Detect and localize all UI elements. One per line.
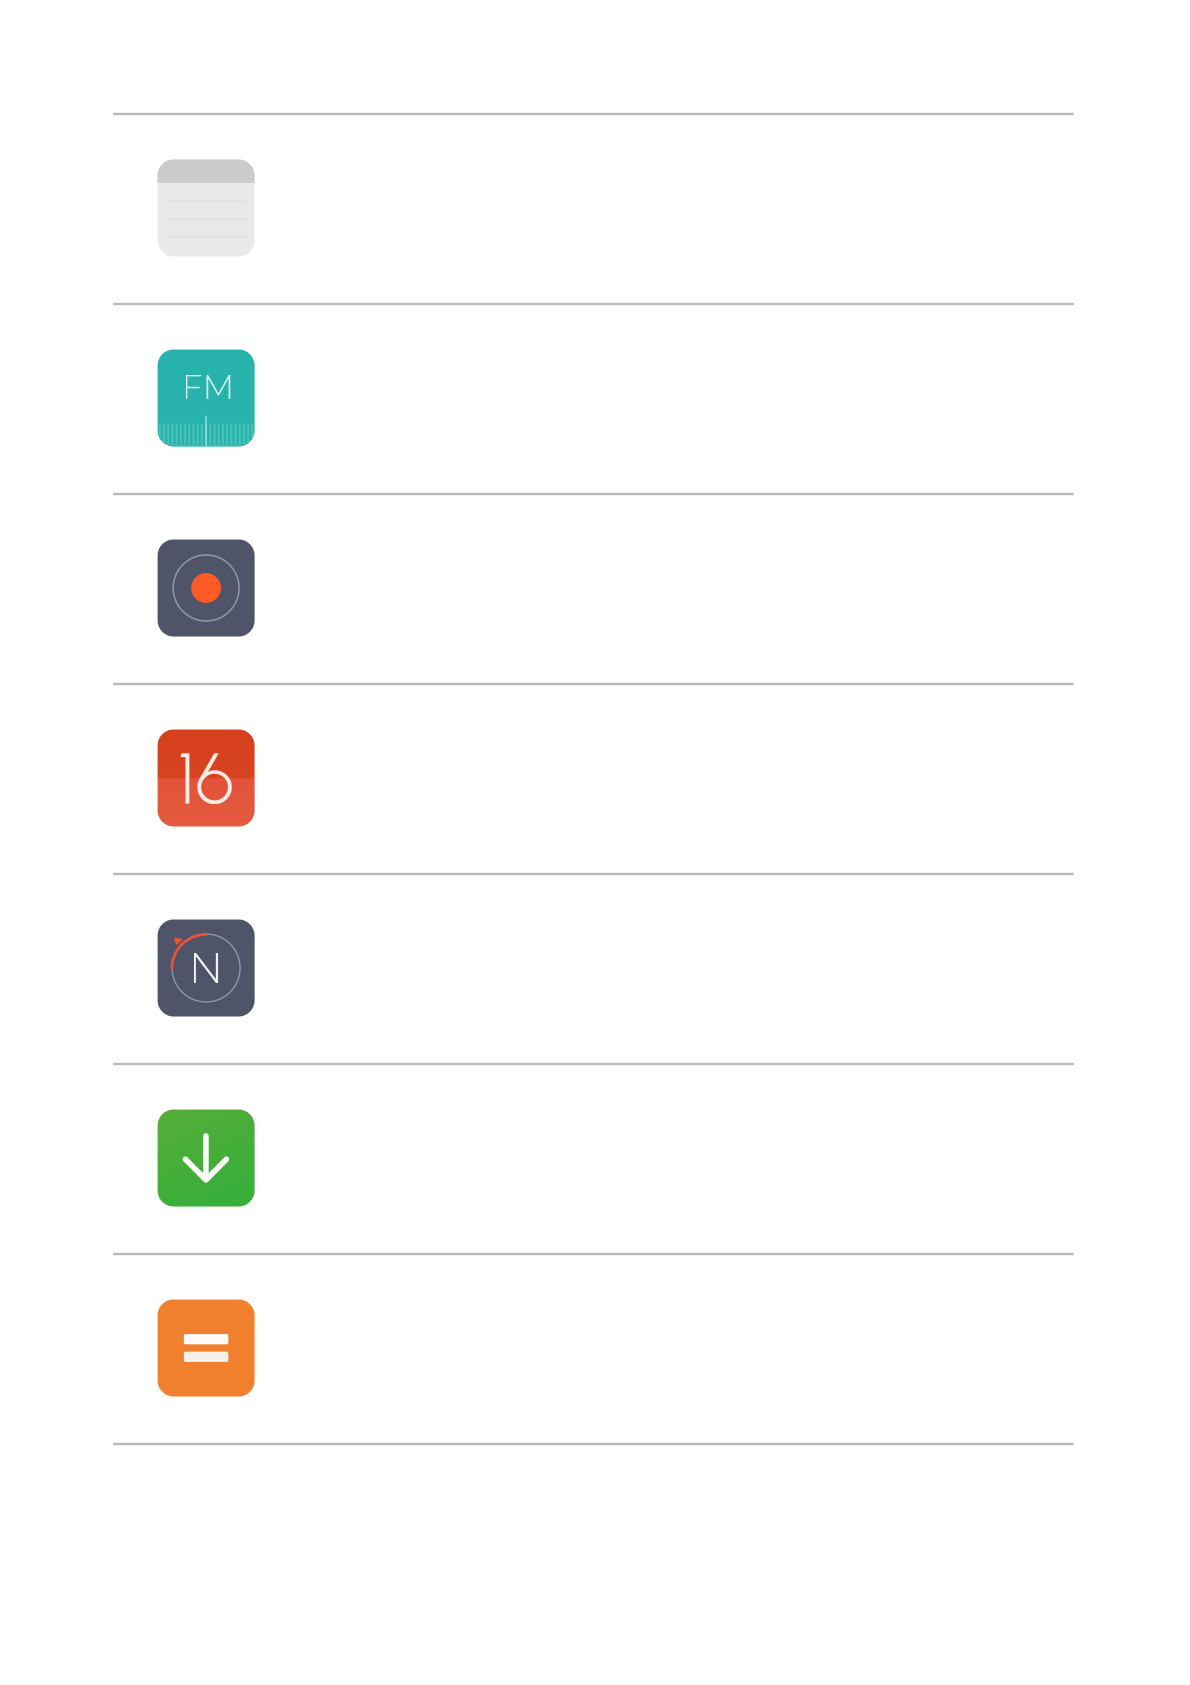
- staticText: N: [189, 942, 224, 994]
- button[interactable]: Compass: [113, 875, 1074, 1063]
- staticText: 16: [178, 735, 235, 821]
- button[interactable]: Calendar: [113, 685, 1074, 873]
- button[interactable]: FM Radio: [113, 305, 1074, 493]
- button[interactable]: Calculator: [113, 1255, 1074, 1443]
- button[interactable]: Downloads: [113, 1065, 1074, 1253]
- staticText: FM: [182, 366, 235, 407]
- button[interactable]: Voice Recorder: [113, 495, 1074, 683]
- button[interactable]: Notes: [113, 115, 1074, 303]
